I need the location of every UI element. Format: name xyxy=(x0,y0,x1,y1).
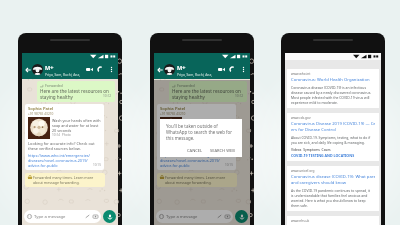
button[interactable]: Sophia Patel xyxy=(25,104,104,170)
staticText: 10:15 xyxy=(93,163,101,167)
staticText: Type a message xyxy=(34,214,66,220)
button[interactable]: Voice message xyxy=(103,210,116,223)
button[interactable]: Forwarded many times. Learn more xyxy=(157,173,237,187)
staticText: diseases/novel-coronavirus-2019/ xyxy=(160,158,220,163)
staticText: SEARCH WEB xyxy=(210,148,235,153)
staticText: Forwarded many times. Learn more xyxy=(33,175,94,180)
staticText: this message. xyxy=(166,135,195,141)
button[interactable]: Call xyxy=(95,64,106,75)
staticText: WhatsApp to search the web for xyxy=(166,129,233,135)
button[interactable]: Type a message xyxy=(156,210,233,223)
staticText: advice-for-public xyxy=(28,163,58,168)
staticText: CANCEL xyxy=(187,148,203,153)
staticText: COVID-19 TESTING AND LOCATIONS xyxy=(291,153,355,158)
staticText: +91 98765 43210 xyxy=(28,112,54,116)
staticText: +91 98765 43210 xyxy=(160,112,186,116)
button[interactable]: www.cdc.gov xyxy=(287,113,379,161)
staticText: worried. Here is what you should know to… xyxy=(291,198,366,203)
staticText: Type a message xyxy=(166,214,198,220)
button[interactable]: Forwarded many times. Learn more xyxy=(25,173,105,187)
staticText: 20 seconds xyxy=(52,128,72,133)
staticText: 10:12 xyxy=(103,94,112,98)
button[interactable]: SEARCH WEB xyxy=(209,148,236,153)
button[interactable]: www.nhs.uk xyxy=(287,216,379,225)
button[interactable]: Back xyxy=(156,66,163,73)
staticText: them safe. xyxy=(291,203,308,208)
staticText: As the COVID-19 pandemic continues to sp… xyxy=(291,188,371,193)
staticText: staying healthy xyxy=(172,94,205,100)
button[interactable]: www.who.int xyxy=(287,69,379,108)
button[interactable]: Video call xyxy=(216,64,227,75)
staticText: soap and water for at least xyxy=(184,123,231,128)
staticText: Forwarded xyxy=(177,83,195,88)
staticText: and caregivers should know xyxy=(291,180,346,186)
staticText: soap and water for at least xyxy=(52,123,99,128)
button[interactable]: Call xyxy=(227,64,238,75)
button[interactable]: Forwarded xyxy=(37,81,115,102)
button[interactable]: Sophia Patel xyxy=(157,104,236,170)
button[interactable]: www.unicef.org xyxy=(287,166,379,211)
button[interactable]: More options xyxy=(238,64,249,75)
staticText: M+ xyxy=(45,64,54,72)
staticText: experience mild to moderate. xyxy=(291,100,338,105)
staticText: https://www.who.int/emergencies/ xyxy=(28,153,91,158)
staticText: Coronavirus disease (COVID-19) is an inf… xyxy=(291,85,367,90)
staticText: You'll be taken outside of xyxy=(166,123,218,129)
staticText: Sophia Patel xyxy=(28,106,54,112)
staticText: staying healthy xyxy=(40,94,73,100)
staticText: www.who.int xyxy=(291,72,311,76)
button[interactable]: Video call xyxy=(84,64,95,75)
button[interactable]: Back xyxy=(24,66,31,73)
staticText: diseases/novel-coronavirus-2019/ xyxy=(28,158,88,163)
staticText: Here are the latest resources on xyxy=(40,88,109,94)
staticText: Most people infected with the COVID-19 v… xyxy=(291,95,370,100)
staticText: www.unicef.org xyxy=(291,169,315,173)
staticText: Videos Symptoms Cases xyxy=(291,147,331,151)
staticText: Here are the latest resources on xyxy=(172,88,241,94)
staticText: 10:15 xyxy=(225,163,233,167)
staticText: www.cdc.gov xyxy=(291,116,311,120)
staticText: Wash your hands often with xyxy=(184,118,233,123)
button[interactable]: Type a message xyxy=(24,210,101,223)
staticText: these verified sources below. xyxy=(28,146,81,151)
staticText: Priya, Sam, Ruchi, Ana, Raj, ... xyxy=(45,72,84,76)
staticText: 10:14 Photo xyxy=(52,133,71,137)
staticText: Coronavirus Disease 2019 (COVID-19) — Ce… xyxy=(291,121,375,127)
staticText: Looking for accurate info? Check out xyxy=(28,141,95,146)
staticText: you are sick, and daily life coping & ma… xyxy=(291,140,365,145)
staticText: 10:14 Photo xyxy=(184,133,203,137)
staticText: Forwarded many times. Learn more xyxy=(165,175,226,180)
button[interactable]: CANCEL xyxy=(186,148,204,153)
staticText: About COVID-19. Symptoms, testing, what … xyxy=(291,135,371,140)
staticText: disease caused by a newly discovered cor… xyxy=(291,90,372,95)
staticText: these verified sources below. xyxy=(160,146,213,151)
staticText: Sophia Patel xyxy=(160,106,186,112)
button[interactable]: Forwarded xyxy=(169,81,247,102)
staticText: M+ xyxy=(177,64,186,72)
staticText: 10:12 xyxy=(235,94,244,98)
staticText: Coronavirus disease (COVID-19): What par… xyxy=(291,174,375,180)
staticText: advice-for-public xyxy=(160,163,190,168)
staticText: 20 seconds xyxy=(184,128,204,133)
staticText: about message forwarding. xyxy=(165,180,212,185)
staticText: Coronavirus: World Health Organization xyxy=(291,77,370,83)
staticText: Priya, Sam, Ruchi, Ana, Raj, ... xyxy=(177,72,216,76)
staticText: Forwarded xyxy=(45,83,63,88)
staticText: is understandable that families feel anx… xyxy=(291,193,368,198)
staticText: Wash your hands often with xyxy=(52,118,101,123)
staticText: https://www.who.int/emergencies/ xyxy=(160,153,223,158)
button[interactable]: More options xyxy=(106,64,117,75)
staticText: about message forwarding. xyxy=(33,180,80,185)
staticText: www.nhs.uk xyxy=(291,219,310,222)
staticText: ers for Disease Control xyxy=(291,127,336,133)
button[interactable]: Voice message xyxy=(235,210,248,223)
